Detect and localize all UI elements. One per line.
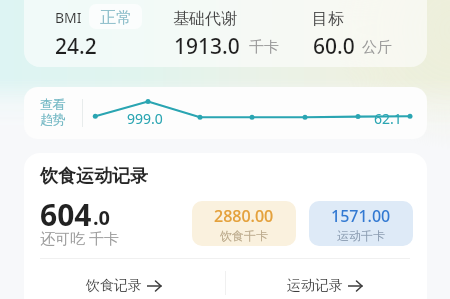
staticText: 1571.00 bbox=[331, 205, 391, 227]
staticText: BMI bbox=[55, 8, 82, 27]
staticText: 62.1 bbox=[374, 109, 402, 128]
staticText: 公斤 bbox=[362, 38, 392, 57]
staticText: 运动记录 bbox=[287, 277, 343, 295]
staticText: 运动千卡 bbox=[337, 228, 385, 243]
staticText: 60.0 bbox=[313, 32, 355, 61]
staticText: 趋势 bbox=[40, 111, 65, 127]
staticText: 2880.00 bbox=[214, 205, 274, 227]
staticText: 基础代谢 bbox=[173, 9, 237, 29]
staticText: 饮食记录 bbox=[86, 277, 142, 295]
staticText: 饮食千卡 bbox=[220, 228, 268, 243]
staticText: 查看 bbox=[40, 96, 65, 112]
staticText: 千卡 bbox=[249, 38, 279, 57]
staticText: 还可吃 千卡 bbox=[40, 228, 119, 248]
staticText: 24.2 bbox=[55, 32, 97, 61]
staticText: 目标 bbox=[312, 9, 344, 29]
button[interactable]: 正常 bbox=[89, 4, 142, 29]
button[interactable]: 查看 bbox=[24, 87, 427, 139]
staticText: 604 bbox=[40, 194, 92, 235]
staticText: 正常 bbox=[100, 8, 132, 28]
button[interactable] bbox=[24, 0, 427, 67]
staticText: 999.0 bbox=[127, 109, 163, 128]
button[interactable]: 运动记录 bbox=[225, 259, 427, 299]
staticText: .0 bbox=[93, 204, 111, 231]
button[interactable]: 1571.00 bbox=[309, 201, 413, 246]
staticText: 饮食运动记录 bbox=[40, 165, 148, 188]
staticText: 1913.0 bbox=[174, 32, 240, 61]
button[interactable]: 饮食记录 bbox=[24, 259, 225, 299]
button[interactable]: 2880.00 bbox=[192, 201, 296, 246]
